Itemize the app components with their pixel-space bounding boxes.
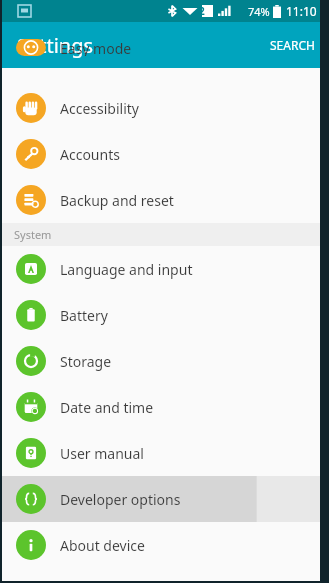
staticText: Date and time [60,398,154,417]
button[interactable]: Developer options [0,476,329,522]
button[interactable]: User manual [0,430,329,476]
button[interactable]: Accessibility [0,85,329,131]
staticText: Language and input [60,260,193,279]
staticText: Accessibility [60,99,139,118]
button[interactable]: Date and time [0,384,329,430]
button[interactable]: About device [0,522,329,568]
staticText: Battery [60,306,108,325]
staticText: 74% [248,4,270,19]
staticText: SEARCH [270,37,315,53]
staticText: Settings [17,32,94,59]
staticText: Developer options [60,490,181,509]
staticText: Easy mode [60,39,132,56]
staticText: Storage [60,352,112,371]
staticText: Backup and reset [60,191,174,210]
button[interactable]: Storage [0,338,329,384]
staticText: 2 [199,4,205,18]
button[interactable]: Accounts [0,131,329,177]
staticText: User manual [60,444,144,463]
button[interactable]: Language and input [0,246,329,292]
staticText: Accounts [60,145,120,164]
button[interactable]: SEARCH [256,25,329,65]
button[interactable]: Backup and reset [0,177,329,223]
staticText: 11:10 [286,3,317,19]
button[interactable]: Easy mode [0,68,329,85]
button[interactable]: Easy mode [0,39,329,56]
staticText: System [14,227,52,242]
staticText: About device [60,536,145,555]
button[interactable]: Battery [0,292,329,338]
